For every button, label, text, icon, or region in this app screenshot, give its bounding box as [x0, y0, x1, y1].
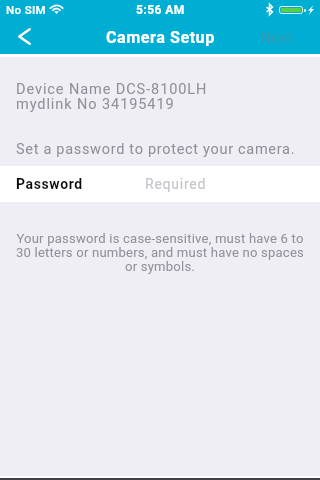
staticText: Your password is case-sensitive, must ha…: [11, 232, 309, 274]
staticText: Required: [145, 176, 207, 192]
staticText: Device Name DCS-8100LH: [16, 82, 208, 97]
staticText: mydlink No 34195419: [16, 97, 175, 112]
button[interactable]: Password: [0, 166, 320, 202]
staticText: Camera Setup: [106, 28, 215, 47]
button[interactable]: Next: [260, 21, 294, 54]
staticText: Next: [260, 29, 294, 47]
staticText: Set a password to protect your camera.: [16, 141, 296, 158]
button[interactable]: Back: [0, 21, 48, 54]
staticText: 5:56 AM: [136, 3, 185, 17]
staticText: No SIM: [6, 3, 46, 16]
staticText: Password: [16, 176, 83, 192]
